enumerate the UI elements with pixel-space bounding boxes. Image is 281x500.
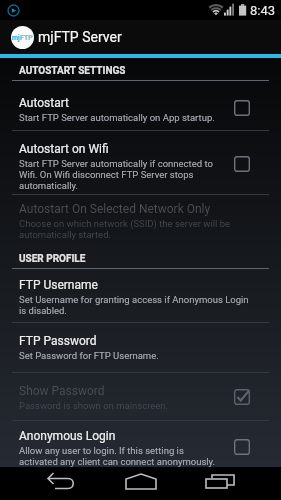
button[interactable]: Autostart On Selected Network Only xyxy=(0,195,281,246)
staticText: mj xyxy=(12,34,20,42)
staticText: Set Password for FTP Username. xyxy=(19,350,159,361)
staticText: AUTOSTART SETTINGS xyxy=(19,65,126,77)
staticText: FTP Password xyxy=(19,334,97,348)
staticText: Start FTP Server automatically on App st… xyxy=(19,112,215,123)
button[interactable]: Home xyxy=(111,467,171,500)
button[interactable]: Recents xyxy=(190,467,250,500)
staticText: USER PROFILE xyxy=(19,253,86,265)
staticText: Set Username for granting access if Anon… xyxy=(19,294,253,316)
button[interactable]: Anonymous Login xyxy=(0,421,281,467)
staticText: Password is shown on mainscreen. xyxy=(19,400,169,411)
staticText: Show Password xyxy=(19,384,105,398)
staticText: Autostart xyxy=(19,96,69,110)
staticText: FTP xyxy=(20,34,33,42)
staticText: Choose on which network (SSID) the serve… xyxy=(19,218,253,240)
button[interactable]: FTP Username xyxy=(0,269,281,323)
button[interactable]: mj xyxy=(0,20,281,54)
staticText: FTP Username xyxy=(19,278,98,292)
staticText: Autostart on Wifi xyxy=(19,142,109,156)
staticText: Anonymous Login xyxy=(19,429,116,443)
staticText: Autostart On Selected Network Only xyxy=(19,202,211,216)
staticText: 8:43 xyxy=(250,3,276,18)
staticText: Allow any user to login. If this setting… xyxy=(19,445,220,467)
button[interactable]: Back xyxy=(32,467,92,500)
staticText: mjFTP Server xyxy=(38,29,122,45)
staticText: Start FTP Server automatically if connec… xyxy=(19,158,220,191)
button[interactable]: Show Password xyxy=(0,373,281,421)
button[interactable]: Autostart on Wifi xyxy=(0,131,281,195)
button[interactable]: Autostart xyxy=(0,81,281,131)
button[interactable]: FTP Password xyxy=(0,323,281,373)
